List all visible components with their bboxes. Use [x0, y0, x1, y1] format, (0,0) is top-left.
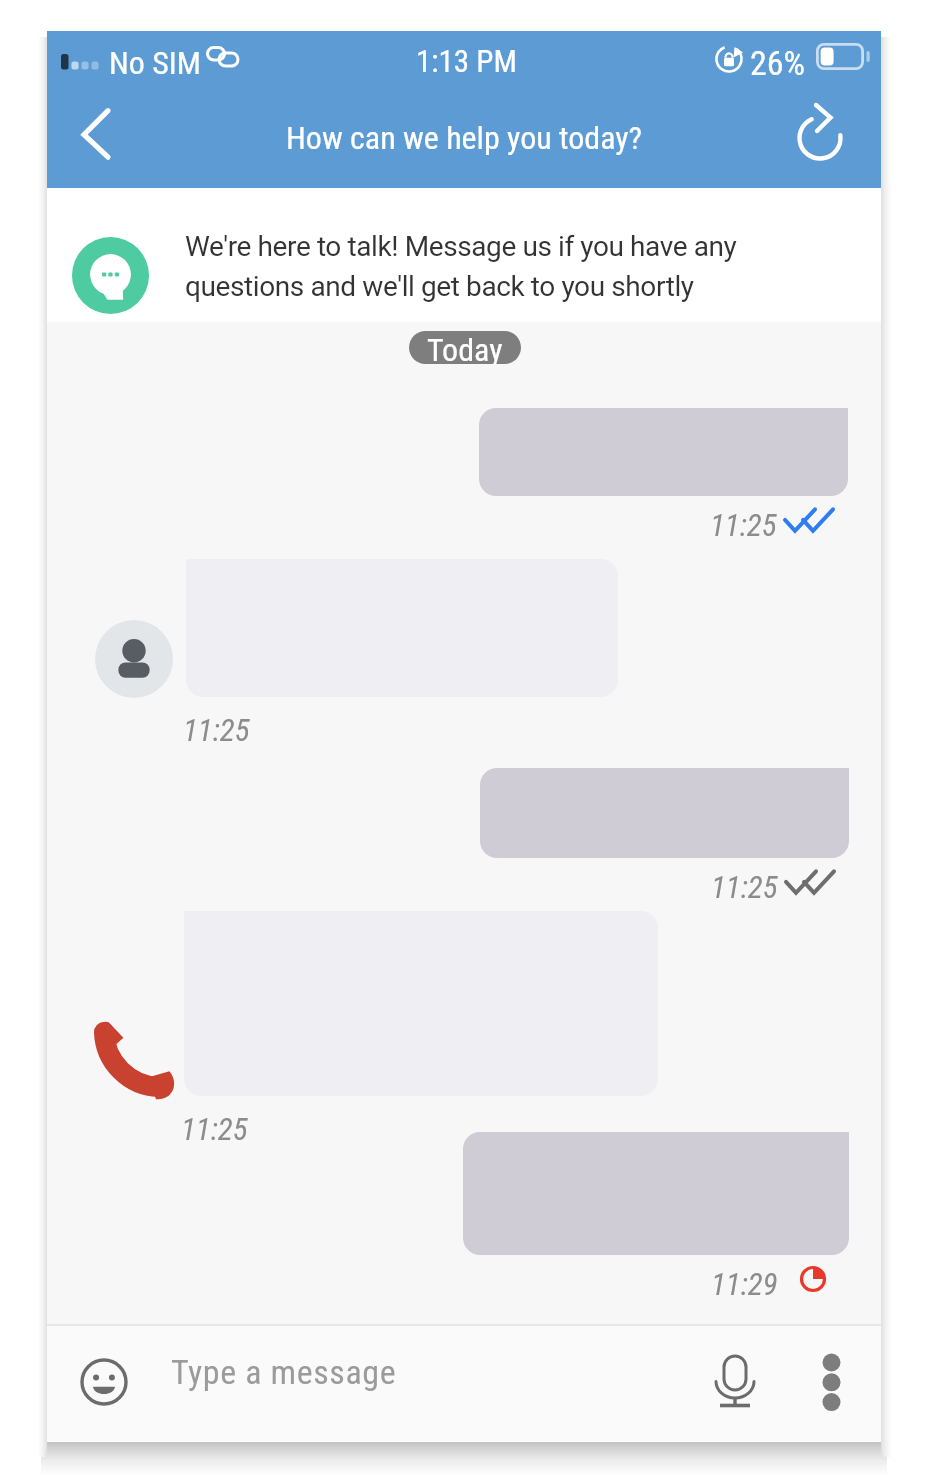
staticText: questions and we'll get back to you shor…: [185, 270, 694, 303]
button[interactable]: [479, 408, 848, 496]
staticText: No SIM: [109, 44, 201, 82]
staticText: 11:25: [183, 712, 250, 748]
button[interactable]: Back: [73, 108, 135, 170]
staticText: 11:25: [181, 1111, 248, 1147]
staticText: 11:25: [710, 507, 777, 543]
staticText: 26%: [750, 43, 806, 83]
staticText: We're here to talk! Message us if you ha…: [185, 230, 737, 263]
staticText: 1:13 PM: [416, 43, 517, 79]
staticText: 11:25: [711, 869, 778, 905]
button[interactable]: [480, 768, 849, 858]
button[interactable]: Voice message: [706, 1348, 764, 1414]
staticText: Type a message: [171, 1352, 397, 1392]
button[interactable]: Today: [409, 331, 521, 364]
button[interactable]: More options: [808, 1346, 854, 1418]
button[interactable]: Refresh: [790, 105, 854, 169]
staticText: 11:29: [711, 1266, 778, 1302]
button[interactable]: Agent avatar: [95, 620, 173, 698]
staticText: Today: [427, 331, 503, 364]
button[interactable]: Emoji: [78, 1356, 130, 1408]
staticText: How can we help you today?: [286, 119, 643, 157]
button[interactable]: Support agent: [72, 237, 149, 314]
